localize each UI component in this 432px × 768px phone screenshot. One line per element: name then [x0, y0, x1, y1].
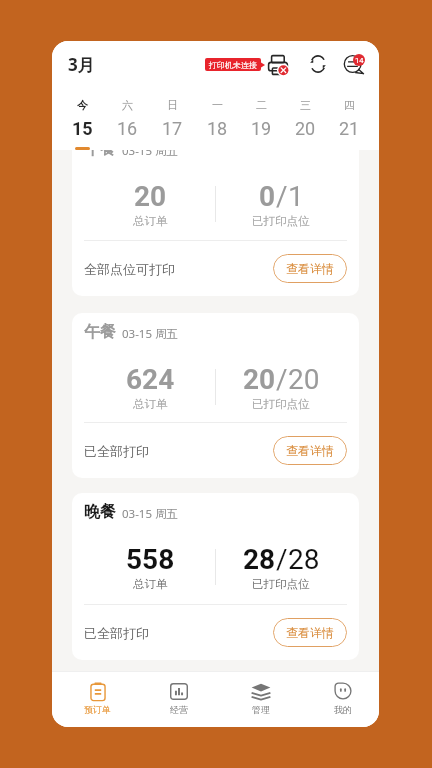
staticText: 午餐 — [84, 322, 116, 342]
staticText: 二 — [256, 98, 267, 112]
button[interactable]: 二 — [239, 98, 283, 150]
button[interactable]: 查看详情 — [273, 436, 347, 465]
button[interactable]: 预订单 — [57, 672, 138, 727]
button[interactable]: 日 — [150, 98, 195, 150]
staticText: 16 — [117, 118, 138, 139]
button[interactable]: 查看详情 — [273, 618, 347, 647]
button[interactable]: 一 — [195, 98, 239, 150]
staticText: 28 — [243, 543, 276, 576]
staticText: 3月 — [68, 53, 95, 76]
button[interactable]: 查看详情 — [273, 254, 347, 283]
button[interactable]: 管理 — [220, 672, 302, 727]
button[interactable]: 我的 — [302, 672, 379, 727]
staticText: 午餐 — [84, 150, 116, 159]
staticText: 六 — [122, 98, 133, 112]
staticText: 已全部打印 — [84, 443, 149, 459]
staticText: / — [276, 180, 288, 213]
staticText: 14 — [355, 56, 364, 65]
staticText: 20 — [288, 363, 320, 396]
staticText: 全部点位可打印 — [84, 261, 175, 277]
staticText: 20 — [295, 118, 316, 139]
staticText: 晚餐 — [84, 502, 116, 522]
staticText: 今 — [77, 98, 88, 112]
staticText: 查看详情 — [286, 443, 334, 458]
staticText: 已打印点位 — [252, 214, 310, 228]
staticText: 已全部打印 — [84, 625, 149, 641]
button[interactable]: 午餐 — [72, 150, 359, 296]
button[interactable]: 今 — [60, 98, 105, 150]
staticText: 20 — [134, 180, 167, 213]
staticText: 查看详情 — [286, 625, 334, 640]
staticText: 19 — [251, 118, 272, 139]
button[interactable]: Messages — [343, 49, 366, 79]
staticText: 预订单 — [84, 704, 111, 715]
staticText: 1 — [288, 180, 304, 213]
staticText: 三 — [300, 98, 311, 112]
staticText: 已打印点位 — [252, 577, 310, 591]
staticText: 17 — [162, 118, 183, 139]
button[interactable]: 晚餐 — [72, 493, 359, 660]
staticText: 21 — [339, 118, 360, 139]
staticText: 15 — [72, 118, 93, 139]
button[interactable]: 四 — [327, 98, 371, 150]
staticText: 一 — [212, 98, 223, 112]
staticText: 日 — [167, 98, 178, 112]
staticText: 558 — [126, 543, 175, 576]
button[interactable]: 三 — [283, 98, 327, 150]
staticText: 624 — [126, 363, 175, 396]
button[interactable]: Printer not connected — [267, 49, 289, 79]
staticText: 四 — [344, 98, 355, 112]
staticText: 0 — [259, 180, 276, 213]
staticText: 03-15 周五 — [122, 506, 179, 522]
staticText: 18 — [207, 118, 228, 139]
button[interactable]: 经营 — [138, 672, 220, 727]
staticText: / — [276, 363, 288, 396]
button[interactable]: Refresh — [308, 49, 327, 79]
button[interactable]: 午餐 — [72, 313, 359, 478]
staticText: 打印机未连接 — [209, 60, 257, 70]
staticText: 查看详情 — [286, 261, 334, 276]
staticText: 总订单 — [133, 397, 168, 411]
staticText: 管理 — [252, 704, 270, 715]
staticText: 经营 — [170, 704, 188, 715]
staticText: 20 — [243, 363, 276, 396]
staticText: 总订单 — [133, 214, 168, 228]
staticText: 28 — [288, 543, 320, 576]
staticText: / — [276, 543, 288, 576]
staticText: 总订单 — [133, 577, 168, 591]
staticText: 03-15 周五 — [122, 150, 179, 159]
button[interactable]: 六 — [105, 98, 150, 150]
staticText: 03-15 周五 — [122, 326, 179, 342]
staticText: 已打印点位 — [252, 397, 310, 411]
staticText: 我的 — [334, 704, 352, 715]
